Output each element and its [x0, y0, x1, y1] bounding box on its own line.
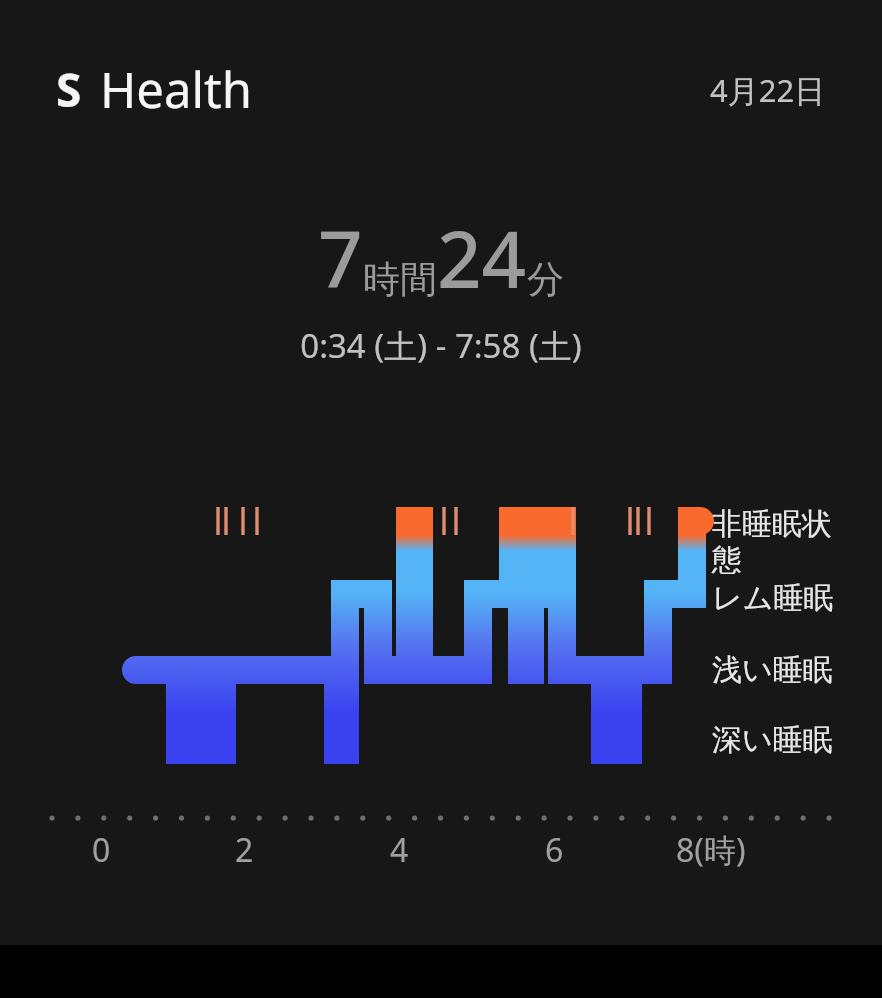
- staticText: 浅い睡眠: [712, 651, 833, 689]
- staticText: 0: [92, 828, 111, 872]
- staticText: Health: [100, 56, 253, 123]
- staticText: レム睡眠: [712, 579, 834, 617]
- staticText: S: [56, 58, 82, 121]
- staticText: 時間: [363, 256, 437, 303]
- staticText: 態: [712, 541, 742, 579]
- staticText: 分: [527, 256, 564, 303]
- staticText: 4月22日: [710, 69, 826, 111]
- staticText: 非睡眠状: [712, 505, 832, 543]
- staticText: 0:34 (土) - 7:58 (土): [0, 323, 882, 368]
- staticText: 6: [545, 828, 564, 872]
- button[interactable]: Sleep stage chart: [0, 490, 882, 800]
- staticText: 2: [235, 828, 254, 872]
- button[interactable]: S: [56, 56, 253, 123]
- button[interactable]: 4月22日: [710, 69, 826, 111]
- staticText: 深い睡眠: [712, 721, 833, 759]
- staticText: 4: [390, 828, 409, 872]
- staticText: 8(時): [676, 828, 746, 872]
- staticText: 24: [437, 205, 527, 311]
- staticText: 7: [318, 205, 363, 311]
